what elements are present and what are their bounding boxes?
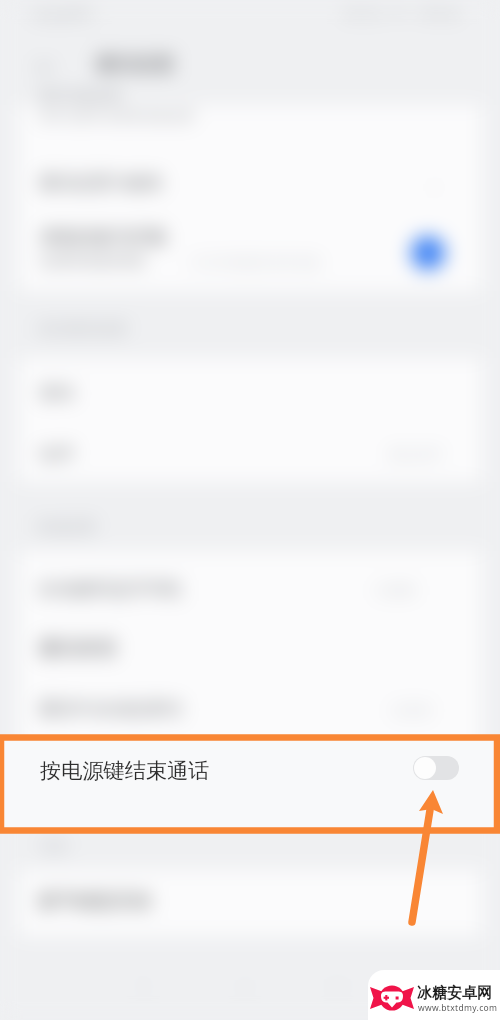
staticText: 冰糖安卓网 <box>417 984 492 1003</box>
button[interactable]: Toggle end call with power button <box>413 756 459 780</box>
staticText: 通话中自动息屏功 <box>38 698 182 721</box>
staticText: 设置来电的转接 <box>40 252 145 271</box>
staticText: 自动接听蓝牙耳机 <box>38 578 182 601</box>
staticText: www.btxtdmy.com <box>418 1002 498 1014</box>
button[interactable]: 按电源键结束通话 <box>0 737 500 831</box>
staticText: 来电转接与拦截 <box>40 226 166 249</box>
staticText: 拨号键盘音效 <box>38 889 152 913</box>
staticText: 铃声 <box>40 444 74 465</box>
staticText: 通话设置与服务 <box>38 172 164 195</box>
staticText: 振动 <box>40 382 74 403</box>
staticText: 按电源键结束通话 <box>40 758 210 785</box>
staticText: 通话设置 <box>95 52 175 77</box>
staticText: 通话录音 <box>38 636 118 661</box>
